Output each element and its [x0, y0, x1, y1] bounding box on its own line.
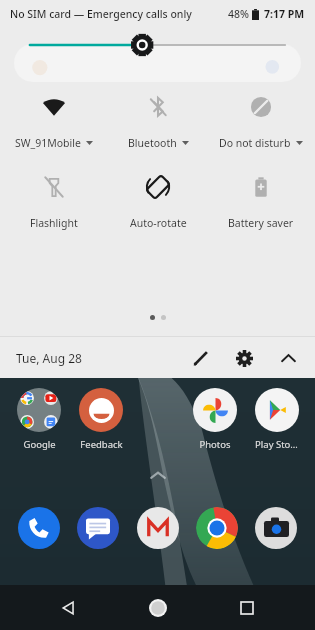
button[interactable]: Auto-rotate — [108, 172, 208, 230]
button[interactable]: Back — [46, 586, 90, 630]
button[interactable]: Edit tiles — [185, 343, 215, 373]
staticText: 7:17 PM — [264, 7, 305, 21]
button[interactable]: Bluetooth — [108, 92, 208, 150]
staticText: Feedback — [80, 438, 123, 451]
button[interactable]: Flashlight — [4, 172, 104, 230]
button[interactable]: Google — [8, 388, 70, 451]
staticText: Play Sto… — [255, 438, 298, 451]
button[interactable]: Open app drawer — [0, 463, 315, 487]
staticText: Battery saver — [228, 216, 294, 230]
button[interactable]: Home — [136, 586, 180, 630]
staticText: No SIM card — Emergency calls only — [10, 7, 192, 21]
button[interactable]: Brightness — [0, 32, 315, 58]
staticText: Bluetooth — [128, 136, 177, 150]
button[interactable]: Recents — [225, 586, 269, 630]
button[interactable]: Photos — [184, 388, 246, 451]
button[interactable]: Settings — [229, 343, 259, 373]
staticText: Flashlight — [30, 216, 78, 230]
staticText: Auto-rotate — [130, 216, 187, 230]
staticText: 48% — [228, 7, 249, 21]
button[interactable]: Do not disturb — [211, 92, 311, 150]
staticText: Do not disturb — [219, 136, 291, 150]
button[interactable]: Play Sto… — [246, 388, 307, 451]
button[interactable]: Feedback — [70, 388, 132, 451]
button[interactable]: Battery saver — [211, 172, 311, 230]
staticText: Google — [23, 438, 56, 451]
button[interactable]: Chrome — [190, 501, 244, 555]
staticText: Photos — [199, 438, 231, 451]
button[interactable]: Messages — [71, 501, 125, 555]
button[interactable]: Phone — [12, 501, 66, 555]
button[interactable]: Gmail — [131, 501, 185, 555]
button[interactable]: Camera — [249, 501, 303, 555]
staticText: SW_91Mobile — [15, 136, 81, 150]
button[interactable]: SW_91Mobile — [4, 92, 104, 150]
button[interactable]: Collapse — [273, 343, 303, 373]
staticText: Tue, Aug 28 — [16, 350, 82, 366]
